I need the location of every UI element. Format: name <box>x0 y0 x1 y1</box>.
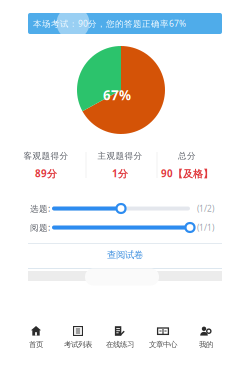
staticText: (1/1) <box>197 222 214 233</box>
staticText: 选题: <box>30 203 50 214</box>
staticText: 90【及格】 <box>161 167 213 180</box>
staticText: 本场考试：90分，您的答题正确率67% <box>33 18 186 29</box>
staticText: 客观题得分 <box>23 151 68 161</box>
staticText: 67% <box>103 86 131 104</box>
button[interactable]: 考试列表 <box>56 325 100 348</box>
button[interactable]: 在线练习 <box>98 325 142 348</box>
staticText: 主观题得分 <box>97 151 142 161</box>
staticText: 文章中心 <box>149 340 177 349</box>
button[interactable]: 我的 <box>184 325 228 348</box>
staticText: 总分 <box>178 151 196 161</box>
staticText: 阅题: <box>30 222 50 233</box>
staticText: 我的 <box>199 340 213 349</box>
staticText: 在线练习 <box>106 340 134 349</box>
button[interactable]: 查阅试卷 <box>28 244 222 266</box>
staticText: 1分 <box>112 167 128 180</box>
button[interactable]: 文章中心 <box>141 325 185 348</box>
staticText: 查阅试卷 <box>107 249 143 261</box>
staticText: 首页 <box>29 340 43 349</box>
staticText: 89分 <box>35 167 57 180</box>
staticText: (1/2) <box>197 203 214 214</box>
button[interactable]: 首页 <box>14 325 58 348</box>
staticText: 考试列表 <box>64 340 92 349</box>
